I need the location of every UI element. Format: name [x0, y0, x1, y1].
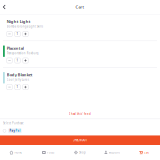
staticText: 1 — [16, 85, 18, 89]
button[interactable]: Increase quantity — [23, 31, 28, 37]
staticText: Pay — [9, 129, 15, 132]
button[interactable]: Pay — [3, 128, 157, 133]
staticText: I had 'chic' feed — [69, 112, 91, 116]
button[interactable]: Home — [0, 147, 32, 157]
button[interactable]: Increase quantity — [23, 58, 28, 63]
staticText: Posts — [47, 151, 54, 154]
staticText: 1 — [16, 59, 18, 62]
staticText: Pal — [15, 129, 20, 132]
button[interactable]: Cart — [128, 147, 160, 157]
staticText: Account — [109, 151, 120, 154]
button[interactable]: Account — [96, 147, 128, 157]
button[interactable]: Decrease quantity — [7, 31, 12, 37]
staticText: 1 — [16, 32, 18, 36]
button[interactable]: Decrease quantity — [7, 58, 12, 63]
button[interactable]: CHECKOUT — [0, 135, 160, 145]
staticText: Night Light — [7, 19, 31, 24]
staticText: Cart — [144, 151, 149, 154]
staticText: Placental — [7, 45, 24, 51]
staticText: Home — [14, 151, 22, 154]
staticText: Shop — [79, 151, 86, 154]
staticText: Cool Jelly Lures — [7, 78, 29, 81]
staticText: Cart — [75, 4, 84, 10]
staticText: Select Purchase — [3, 121, 24, 125]
button[interactable]: Back — [0, 2, 9, 12]
staticText: Body Blanket — [7, 72, 33, 77]
button[interactable]: Posts — [32, 147, 64, 157]
button[interactable]: Increase quantity — [23, 84, 28, 90]
staticText: Bomba Tolonga Light Skills — [7, 25, 43, 28]
staticText: Transportation Roxburg — [7, 51, 39, 55]
button[interactable]: Shop — [64, 147, 96, 157]
button[interactable]: Decrease quantity — [7, 84, 12, 90]
staticText: CHECKOUT — [72, 138, 87, 142]
